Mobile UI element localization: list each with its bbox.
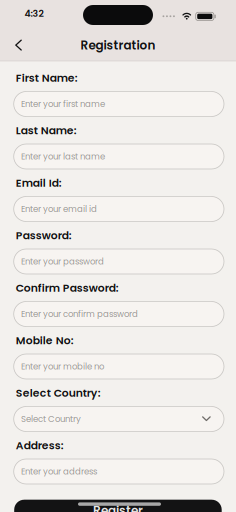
button[interactable]: Enter your email id bbox=[14, 196, 224, 221]
staticText: Enter your first name bbox=[21, 98, 105, 110]
staticText: 4:32 bbox=[24, 7, 43, 20]
staticText: Enter your last name bbox=[21, 150, 105, 162]
staticText: Select Country: bbox=[16, 385, 101, 401]
button[interactable]: Back bbox=[11, 37, 27, 53]
staticText: First Name: bbox=[16, 70, 78, 86]
staticText: Enter your mobile no bbox=[21, 360, 104, 372]
button[interactable]: Register bbox=[14, 500, 222, 512]
staticText: Password: bbox=[16, 228, 72, 243]
staticText: Enter your confirm password bbox=[21, 308, 138, 320]
staticText: Register bbox=[93, 502, 143, 512]
staticText: Select Country bbox=[21, 413, 81, 425]
staticText: Enter your address bbox=[21, 465, 97, 477]
button[interactable]: Enter your mobile no bbox=[14, 354, 224, 379]
staticText: Mobile No: bbox=[16, 333, 74, 348]
staticText: Enter your password bbox=[21, 255, 104, 267]
staticText: Registration bbox=[80, 37, 155, 54]
staticText: Address: bbox=[16, 438, 64, 453]
staticText: Email Id: bbox=[16, 175, 62, 191]
button[interactable]: Select Country bbox=[14, 406, 224, 431]
staticText: Enter your email id bbox=[21, 203, 97, 215]
staticText: Last Name: bbox=[16, 123, 77, 138]
staticText: Confirm Password: bbox=[16, 280, 119, 296]
button[interactable]: Enter your password bbox=[14, 249, 224, 274]
button[interactable]: Enter your address bbox=[14, 459, 224, 484]
button[interactable]: Enter your last name bbox=[14, 144, 224, 169]
button[interactable]: Enter your first name bbox=[14, 91, 224, 116]
button[interactable]: Enter your confirm password bbox=[14, 301, 224, 326]
